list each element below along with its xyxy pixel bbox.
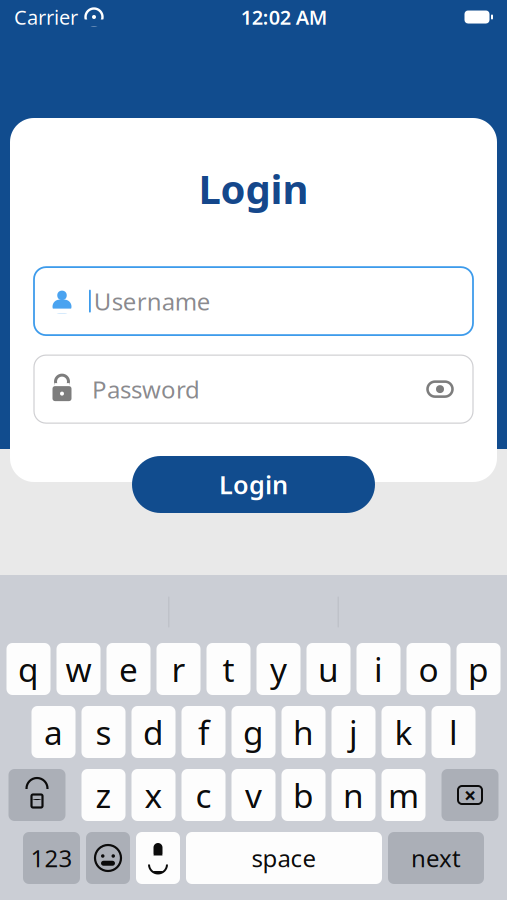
staticText: Login [219,468,288,501]
button[interactable]: s [81,706,125,758]
staticText: t [222,647,234,691]
staticText: v [245,773,262,817]
button[interactable]: h [281,706,325,758]
button[interactable]: p [456,643,500,695]
staticText: o [418,647,438,691]
staticText: Password [92,373,200,405]
button[interactable]: m [381,769,425,821]
button[interactable]: f [181,706,225,758]
button[interactable]: d [131,706,175,758]
staticText: f [198,710,209,754]
button[interactable]: y [256,643,300,695]
button[interactable]: w [56,643,100,695]
staticText: a [44,710,63,754]
staticText: Username [94,285,211,317]
staticText: 12:02 AM [241,4,328,30]
button[interactable]: k [381,706,425,758]
button[interactable]: g [231,706,275,758]
button[interactable]: 123 [23,832,80,884]
button[interactable]: u [306,643,350,695]
button[interactable]: n [331,769,375,821]
button[interactable]: z [81,769,125,821]
staticText: w [65,647,91,691]
staticText: i [374,647,383,691]
staticText: c [195,773,211,817]
button[interactable]: space [186,832,382,884]
staticText: space [251,842,316,874]
button[interactable]: Emoji keyboard [86,832,130,884]
staticText: k [394,710,412,754]
button[interactable]: Delete [441,769,498,821]
staticText: 123 [30,842,72,874]
staticText: l [449,710,458,754]
staticText: m [388,773,419,817]
button[interactable]: i [356,643,400,695]
button[interactable]: c [181,769,225,821]
staticText: r [171,647,185,691]
button[interactable]: Shift [8,769,65,821]
staticText: Carrier [14,4,78,30]
button[interactable]: q [6,643,50,695]
staticText: h [293,710,314,754]
button[interactable]: b [281,769,325,821]
button[interactable]: t [206,643,250,695]
staticText: next [411,842,461,874]
staticText: j [349,710,358,754]
button[interactable]: Dictate [136,832,180,884]
staticText: × [464,781,476,809]
staticText: e [119,647,138,691]
staticText: x [144,773,162,817]
staticText: q [18,647,39,691]
staticText: u [318,647,339,691]
button[interactable]: next [388,832,484,884]
staticText: s [95,710,111,754]
staticText: b [293,773,314,817]
button[interactable]: r [156,643,200,695]
button[interactable]: e [106,643,150,695]
button[interactable]: a [31,706,75,758]
staticText: p [468,647,489,691]
staticText: n [343,773,364,817]
button[interactable]: j [331,706,375,758]
staticText: d [143,710,164,754]
button[interactable]: l [431,706,475,758]
staticText: Login [198,162,308,215]
staticText: z [95,773,111,817]
button[interactable]: o [406,643,450,695]
staticText: g [243,710,264,754]
button[interactable]: v [231,769,275,821]
button[interactable]: x [131,769,175,821]
button[interactable]: Show password [421,370,459,408]
button[interactable]: Login [132,456,375,513]
staticText: y [270,647,287,691]
